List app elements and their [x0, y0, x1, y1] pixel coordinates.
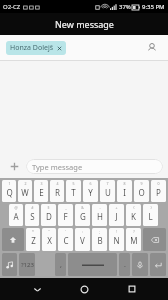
staticText: M — [130, 235, 138, 246]
button[interactable]: 2 — [18, 180, 32, 202]
staticText: 6 — [89, 181, 92, 186]
staticText: Type message — [32, 162, 83, 172]
staticText: X — [47, 235, 52, 246]
button[interactable]: : — [75, 228, 90, 251]
button[interactable]: ? — [126, 228, 141, 251]
button[interactable]: @ — [9, 204, 23, 226]
staticText: P — [156, 187, 161, 198]
staticText: 0 — [157, 181, 160, 186]
button[interactable]: Voice input — [132, 253, 148, 276]
button[interactable]: Home — [73, 278, 95, 300]
staticText: V — [80, 235, 85, 246]
staticText: @ — [14, 205, 18, 210]
staticText: 9 — [140, 181, 143, 186]
staticText: # — [31, 205, 34, 210]
button[interactable]: ' — [58, 228, 73, 251]
button[interactable]: # — [25, 204, 39, 226]
button[interactable]: Backspace — [143, 228, 166, 251]
staticText: U — [105, 187, 111, 198]
button[interactable]: 9 — [134, 180, 149, 202]
staticText: 5 — [72, 181, 75, 186]
staticText: Q — [6, 187, 13, 198]
staticText: " — [48, 229, 50, 234]
staticText: Z — [31, 235, 36, 246]
staticText: W — [21, 187, 29, 198]
button[interactable]: 7 — [100, 180, 115, 202]
staticText: Honza Dolejš — [10, 43, 54, 53]
staticText: ; — [99, 229, 100, 234]
staticText: L — [148, 211, 153, 222]
staticText: ! — [116, 229, 117, 234]
staticText: 4 — [56, 181, 59, 186]
staticText: ? — [133, 229, 135, 234]
staticText: _ — [65, 205, 67, 210]
staticText: + — [115, 205, 118, 210]
button[interactable]: + — [109, 204, 124, 226]
button[interactable]: , — [55, 253, 66, 276]
button[interactable]: Shift — [2, 228, 24, 251]
staticText: * — [32, 229, 34, 234]
button[interactable]: _ — [58, 204, 73, 226]
staticText: 7 — [106, 181, 109, 186]
button[interactable]: Symbols — [19, 253, 35, 276]
staticText: & — [81, 205, 84, 210]
button[interactable]: Enter — [150, 253, 166, 276]
staticText: 37% — [119, 3, 131, 11]
button[interactable]: Add attachment — [5, 157, 23, 175]
button[interactable]: Emoji — [2, 253, 17, 276]
staticText: T — [71, 187, 76, 198]
button[interactable]: - — [92, 204, 107, 226]
button[interactable]: Add contact — [142, 38, 162, 58]
staticText: B — [97, 235, 103, 246]
staticText: I — [123, 187, 126, 198]
staticText: H — [97, 211, 103, 222]
staticText: 1 — [8, 181, 11, 186]
staticText: E — [39, 187, 44, 198]
button[interactable]: 4 — [50, 180, 64, 202]
staticText: ?123 — [21, 261, 34, 269]
staticText: 3 — [40, 181, 43, 186]
staticText: O — [138, 187, 145, 198]
button[interactable]: " — [42, 228, 56, 251]
staticText: G — [80, 211, 86, 222]
staticText: N — [113, 235, 120, 246]
staticText: New message — [55, 18, 114, 30]
button[interactable]: Back — [26, 278, 48, 300]
staticText: ( — [133, 205, 135, 210]
staticText: 9:35 PM — [142, 3, 165, 11]
staticText: ' — [65, 229, 66, 234]
staticText: S — [30, 211, 35, 222]
staticText: O2-CZ — [3, 3, 21, 11]
button[interactable]: 6 — [83, 180, 98, 202]
button[interactable]: $ — [41, 204, 56, 226]
staticText: ) — [150, 205, 152, 210]
staticText: $ — [47, 205, 50, 210]
staticText: K — [131, 211, 136, 222]
staticText: D — [46, 211, 52, 222]
button[interactable]: Recents — [121, 278, 143, 300]
staticText: F — [63, 211, 68, 222]
button[interactable]: 1 — [2, 180, 16, 202]
staticText: C — [63, 235, 69, 246]
button[interactable]: 0 — [151, 180, 166, 202]
button[interactable]: 5 — [66, 180, 81, 202]
staticText: 8 — [123, 181, 126, 186]
button[interactable]: Space — [68, 253, 117, 276]
staticText: : — [82, 229, 83, 234]
button[interactable]: 3 — [34, 180, 48, 202]
button[interactable]: * — [26, 228, 40, 251]
staticText: Y — [88, 187, 93, 198]
button[interactable]: 8 — [117, 180, 132, 202]
staticText: . — [124, 260, 126, 270]
staticText: , — [60, 260, 62, 270]
button[interactable]: Type message — [26, 159, 163, 174]
staticText: R — [55, 187, 60, 198]
button[interactable]: Honza Dolejš — [6, 41, 66, 55]
staticText: 2 — [24, 181, 27, 186]
button[interactable]: ! — [109, 228, 124, 251]
button[interactable]: & — [75, 204, 90, 226]
button[interactable]: ; — [92, 228, 107, 251]
button[interactable]: ) — [143, 204, 158, 226]
button[interactable]: ( — [126, 204, 141, 226]
